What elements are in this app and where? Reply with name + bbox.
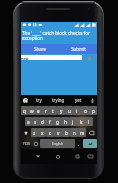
staticText: English [52, 142, 63, 146]
button[interactable]: d [39, 117, 46, 126]
button[interactable]: Home [53, 152, 62, 161]
button[interactable]: try [36, 97, 42, 103]
button[interactable]: g [53, 117, 61, 126]
staticText: j [72, 119, 74, 125]
staticText: t [52, 108, 54, 114]
staticText: m [80, 130, 85, 136]
button[interactable]: Change keyboard [86, 152, 95, 161]
button[interactable]: trying [52, 97, 65, 103]
staticText: x [41, 130, 44, 136]
button[interactable]: Google search [23, 98, 28, 103]
button[interactable]: t [49, 106, 57, 115]
staticText: k [80, 119, 83, 125]
button[interactable]: Emoji [32, 139, 40, 148]
button[interactable]: Shift [21, 128, 31, 137]
button[interactable]: Submit [59, 44, 97, 54]
staticText: yet [75, 97, 82, 103]
staticText: g [56, 119, 59, 125]
staticText: try [21, 55, 29, 60]
button[interactable]: p [89, 106, 97, 115]
button[interactable]: u [65, 106, 73, 115]
staticText: d [41, 119, 44, 125]
staticText: s [34, 119, 37, 125]
button[interactable]: z [31, 128, 38, 137]
button[interactable]: e [35, 106, 42, 115]
button[interactable]: b [62, 128, 70, 137]
staticText: ?123 [23, 142, 30, 146]
button[interactable]: a [25, 117, 32, 126]
button[interactable]: Voice input [89, 95, 95, 105]
staticText: b [65, 130, 68, 136]
staticText: i [76, 108, 78, 114]
staticText: n [73, 130, 76, 136]
button[interactable]: yet [75, 97, 82, 103]
button[interactable]: Backspace [86, 128, 97, 137]
staticText: Submit [71, 46, 86, 52]
button[interactable]: q [21, 106, 28, 115]
button[interactable]: i [73, 106, 81, 115]
staticText: u [68, 108, 71, 114]
button[interactable]: o [81, 106, 89, 115]
staticText: r [45, 108, 47, 114]
button[interactable]: m [78, 128, 86, 137]
staticText: trying [52, 97, 65, 103]
staticText: try [36, 97, 42, 103]
button[interactable]: s [32, 117, 39, 126]
button[interactable]: Enter [83, 139, 97, 148]
button[interactable]: h [61, 117, 69, 126]
button[interactable]: k [77, 117, 85, 126]
staticText: q [23, 108, 26, 114]
staticText: o [84, 108, 87, 114]
button[interactable]: Period [75, 139, 83, 148]
button[interactable]: y [57, 106, 65, 115]
staticText: y [60, 108, 63, 114]
button[interactable]: l [85, 117, 93, 126]
staticText: The '____' catch block checks for except… [22, 30, 90, 42]
button[interactable]: try [21, 55, 82, 60]
staticText: l [88, 119, 90, 125]
staticText: . [78, 141, 80, 147]
staticText: e [37, 108, 40, 114]
button[interactable]: Recent apps [73, 152, 82, 161]
button[interactable]: v [54, 128, 62, 137]
button[interactable]: c [46, 128, 54, 137]
staticText: h [64, 119, 67, 125]
staticText: z [33, 130, 36, 136]
button[interactable]: x [38, 128, 46, 137]
staticText: p [92, 108, 95, 114]
button[interactable]: Back [33, 152, 42, 161]
staticText: w [30, 108, 34, 114]
staticText: v [57, 130, 60, 136]
button[interactable]: Symbols [21, 139, 32, 148]
button[interactable]: n [70, 128, 78, 137]
button[interactable]: f [46, 117, 53, 126]
staticText: a [27, 119, 30, 125]
button[interactable]: r [42, 106, 49, 115]
staticText: c [49, 130, 52, 136]
button[interactable]: Share [21, 44, 59, 54]
button[interactable]: j [69, 117, 77, 126]
button[interactable]: w [28, 106, 35, 115]
staticText: Share [34, 46, 46, 52]
button[interactable]: Space [40, 139, 75, 148]
staticText: f [49, 119, 51, 125]
